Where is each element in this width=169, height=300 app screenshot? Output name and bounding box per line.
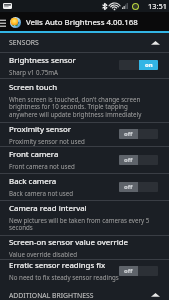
staticText: Value override disabled [9, 250, 77, 258]
staticText: SENSORS [9, 38, 39, 47]
button[interactable]: Switch off [119, 182, 158, 192]
other: Collapse section [151, 292, 160, 298]
button[interactable]: Erratic sensor readings fix [0, 259, 169, 282]
staticText: Front camera not used [9, 162, 75, 170]
button[interactable]: Switch off [119, 266, 158, 276]
staticText: Front camera [9, 149, 59, 160]
button[interactable]: Navigation menu [0, 12, 169, 33]
button[interactable]: Proximity sensor [0, 122, 169, 146]
staticText: When screen is touched, don't change scr… [9, 95, 150, 119]
staticText: Back camera [9, 176, 57, 187]
button[interactable]: Switch off [119, 129, 158, 139]
staticText: Screen touch [9, 82, 58, 93]
button[interactable]: Switch on [119, 60, 158, 70]
button[interactable]: Back camera [0, 173, 169, 200]
staticText: Camera read interval [9, 203, 87, 214]
staticText: Sharp v1 0.75mA [9, 68, 58, 76]
staticText: off [124, 267, 133, 275]
button[interactable]: ADDITIONAL BRIGHTNESS [0, 282, 169, 300]
other: Collapse section [151, 40, 160, 46]
button[interactable]: Camera read interval [0, 200, 169, 235]
staticText: Back camera not used [9, 189, 74, 197]
staticText: 13:51 [148, 1, 167, 11]
staticText: ADDITIONAL BRIGHTNESS [9, 291, 94, 300]
staticText: Brightness sensor [9, 55, 76, 66]
staticText: Erratic sensor readings fix [9, 260, 106, 271]
staticText: off [124, 156, 133, 164]
button[interactable]: Screen touch [0, 78, 169, 122]
other: Navigation menu [0, 18, 6, 27]
button[interactable]: Screen-on sensor value override [0, 235, 169, 259]
button[interactable]: Brightness sensor [0, 52, 169, 78]
staticText: Velis Auto Brightness 4.00.168 [26, 17, 138, 28]
button[interactable]: SENSORS [0, 33, 169, 52]
staticText: off [124, 183, 133, 191]
staticText: Screen-on sensor value override [9, 237, 128, 248]
staticText: No need to fix steady sensor readings [9, 273, 119, 281]
staticText: Proximity sensor [9, 124, 71, 135]
button[interactable]: Front camera [0, 146, 169, 173]
staticText: off [124, 130, 133, 138]
staticText: on [145, 61, 153, 69]
staticText: New pictures will be taken from cameras … [9, 216, 150, 232]
button[interactable]: Switch off [119, 155, 158, 165]
staticText: Proximity sensor not used [9, 137, 85, 145]
